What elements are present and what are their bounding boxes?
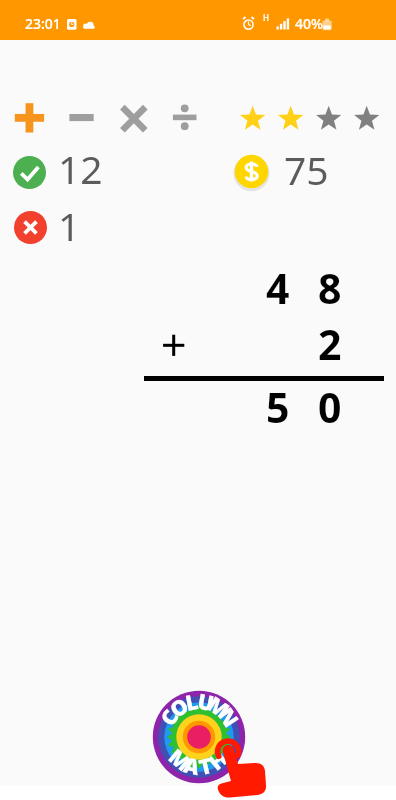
button[interactable]: Coins xyxy=(233,153,270,190)
button[interactable]: Star 3 xyxy=(310,102,348,134)
button[interactable]: Column Math logo xyxy=(152,690,246,784)
button[interactable]: Correct answers xyxy=(13,156,46,189)
button[interactable]: Wrong answers xyxy=(14,211,47,244)
button[interactable]: Addition xyxy=(14,102,46,134)
button[interactable]: Star 2 xyxy=(272,102,310,134)
button[interactable]: Star 1 xyxy=(234,102,272,134)
button[interactable]: Subtraction xyxy=(66,102,98,134)
button[interactable]: Star 4 xyxy=(348,102,386,134)
button[interactable]: Division xyxy=(170,102,202,134)
button[interactable]: Multiplication xyxy=(118,102,150,134)
